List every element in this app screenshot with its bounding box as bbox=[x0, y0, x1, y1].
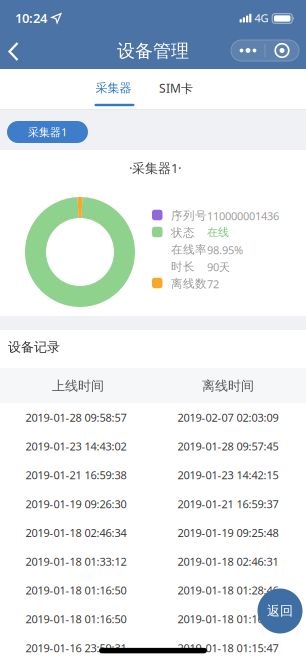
staticText: 2019-01-28 09:57:45 bbox=[177, 439, 278, 454]
staticText: 4G bbox=[254, 10, 268, 25]
button[interactable]: Back bbox=[0, 30, 19, 69]
staticText: 2019-01-23 14:42:15 bbox=[177, 468, 278, 483]
staticText: 110000001436 bbox=[207, 208, 279, 223]
staticText: 在线率 bbox=[171, 242, 207, 257]
staticText: 10:24 bbox=[15, 9, 47, 27]
button[interactable]: Close bbox=[265, 40, 299, 61]
staticText: 90天 bbox=[207, 259, 230, 274]
staticText: 2019-01-19 09:26:30 bbox=[25, 496, 126, 511]
staticText: 2019-01-18 01:33:12 bbox=[25, 554, 126, 569]
staticText: 设备记录 bbox=[8, 339, 60, 355]
staticText: 在线 bbox=[207, 225, 229, 239]
staticText: 采集器 bbox=[95, 80, 131, 95]
staticText: 2019-01-18 02:46:31 bbox=[177, 554, 278, 569]
staticText: 返回 bbox=[267, 603, 293, 619]
staticText: ·采集器1· bbox=[129, 159, 181, 177]
staticText: 2019-01-21 16:59:38 bbox=[25, 468, 126, 483]
staticText: 2019-01-16 23:59:31 bbox=[25, 640, 126, 655]
staticText: 状态 bbox=[171, 225, 195, 240]
staticText: 离线数 bbox=[171, 276, 207, 291]
button[interactable]: More bbox=[231, 40, 265, 61]
button[interactable]: 采集器1 bbox=[7, 121, 88, 143]
staticText: 离线时间 bbox=[202, 378, 254, 394]
button[interactable]: 采集器 bbox=[95, 80, 131, 95]
staticText: 2019-01-18 01:16:46 bbox=[177, 612, 278, 627]
staticText: 2019-01-18 01:16:50 bbox=[25, 583, 126, 598]
staticText: 2019-01-28 09:58:57 bbox=[25, 410, 126, 425]
staticText: 2019-02-07 02:03:09 bbox=[177, 410, 278, 425]
button[interactable]: 返回 bbox=[257, 588, 302, 633]
staticText: SIM卡 bbox=[159, 80, 193, 96]
staticText: 72 bbox=[207, 276, 219, 291]
staticText: 2019-01-18 01:15:47 bbox=[177, 640, 278, 655]
staticText: 2019-01-18 02:46:34 bbox=[25, 525, 126, 540]
staticText: 上线时间 bbox=[52, 378, 104, 394]
staticText: 时长 bbox=[171, 259, 195, 274]
staticText: 序列号 bbox=[171, 208, 207, 223]
staticText: 采集器1 bbox=[28, 124, 67, 139]
staticText: 2019-01-18 01:28:46 bbox=[177, 583, 278, 598]
staticText: 2019-01-19 09:25:48 bbox=[177, 525, 278, 540]
staticText: 2019-01-18 01:16:50 bbox=[25, 612, 126, 627]
staticText: 2019-01-21 16:59:37 bbox=[177, 496, 278, 511]
staticText: 设备管理 bbox=[117, 40, 189, 62]
staticText: 98.95% bbox=[207, 242, 243, 257]
staticText: 2019-01-23 14:43:02 bbox=[25, 439, 126, 454]
button[interactable]: SIM卡 bbox=[159, 80, 193, 96]
